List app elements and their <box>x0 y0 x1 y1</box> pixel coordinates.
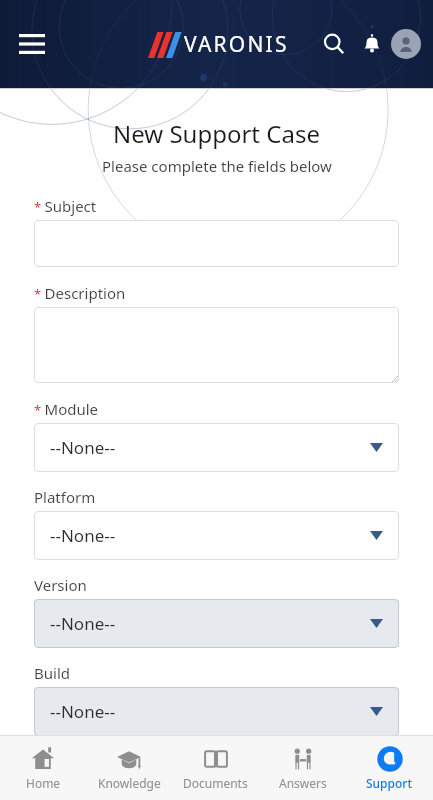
staticText: VARONIS <box>184 30 289 59</box>
button[interactable]: --None-- <box>34 423 399 472</box>
staticText: Home <box>26 775 61 791</box>
button[interactable]: --None-- <box>34 511 399 560</box>
button[interactable] <box>34 220 399 267</box>
button[interactable]: Profile <box>391 29 421 59</box>
button[interactable]: Search <box>315 25 353 63</box>
staticText: Answers <box>279 775 327 791</box>
staticText: * Description <box>34 283 126 303</box>
button[interactable]: --None-- <box>34 687 399 736</box>
button[interactable] <box>34 775 399 800</box>
button[interactable]: Support <box>346 736 433 800</box>
staticText: Knowledge <box>98 775 161 791</box>
staticText: * Subject <box>34 196 97 216</box>
staticText: --None-- <box>50 700 116 723</box>
button[interactable]: --None-- <box>34 599 399 648</box>
button[interactable]: Documents <box>172 736 259 800</box>
button[interactable]: Knowledge <box>86 736 172 800</box>
staticText: * Priority <box>34 751 96 771</box>
staticText: --None-- <box>50 612 116 635</box>
staticText: Support <box>366 775 413 791</box>
button[interactable]: Home <box>0 736 86 800</box>
staticText: --None-- <box>50 436 116 459</box>
staticText: --None-- <box>50 524 116 547</box>
button[interactable] <box>34 307 399 383</box>
staticText: Documents <box>183 775 248 791</box>
staticText: Platform <box>34 487 96 507</box>
button[interactable]: Menu <box>10 22 54 66</box>
staticText: Version <box>34 575 87 595</box>
staticText: New Support Case <box>113 117 320 150</box>
staticText: * Module <box>34 399 99 419</box>
staticText: Build <box>34 663 70 683</box>
staticText: Please complete the fields below <box>102 156 332 176</box>
button[interactable]: Answers <box>259 736 346 800</box>
button[interactable]: Notifications <box>353 25 391 63</box>
